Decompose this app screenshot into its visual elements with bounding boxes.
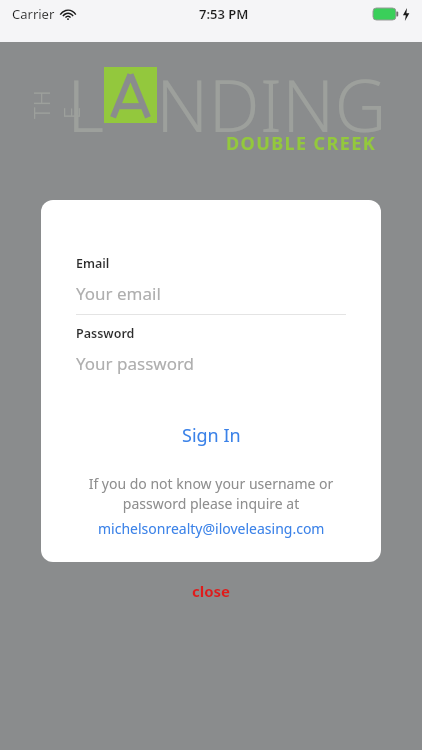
staticText: Your email — [76, 282, 161, 305]
button[interactable]: Sign In — [41, 418, 381, 452]
button[interactable]: Your email — [76, 280, 346, 306]
staticText: 7:53 PM — [199, 5, 249, 23]
staticText: If you do not know your username or pass… — [61, 474, 361, 514]
staticText: Password — [76, 325, 135, 342]
staticText: michelsonrealty@iloveleasing.com — [98, 519, 325, 538]
staticText: THE — [26, 79, 86, 119]
button[interactable]: Your password — [76, 350, 346, 376]
button[interactable]: close — [176, 578, 247, 604]
button[interactable]: michelsonrealty@iloveleasing.com — [41, 517, 381, 539]
staticText: DOUBLE CREEK — [226, 131, 377, 156]
staticText: L — [67, 55, 105, 153]
staticText: Sign In — [182, 423, 241, 448]
staticText: Carrier — [12, 5, 55, 23]
staticText: close — [192, 581, 231, 601]
staticText: Email — [76, 255, 110, 272]
staticText: NDING — [156, 55, 387, 153]
staticText: Your password — [76, 352, 195, 375]
